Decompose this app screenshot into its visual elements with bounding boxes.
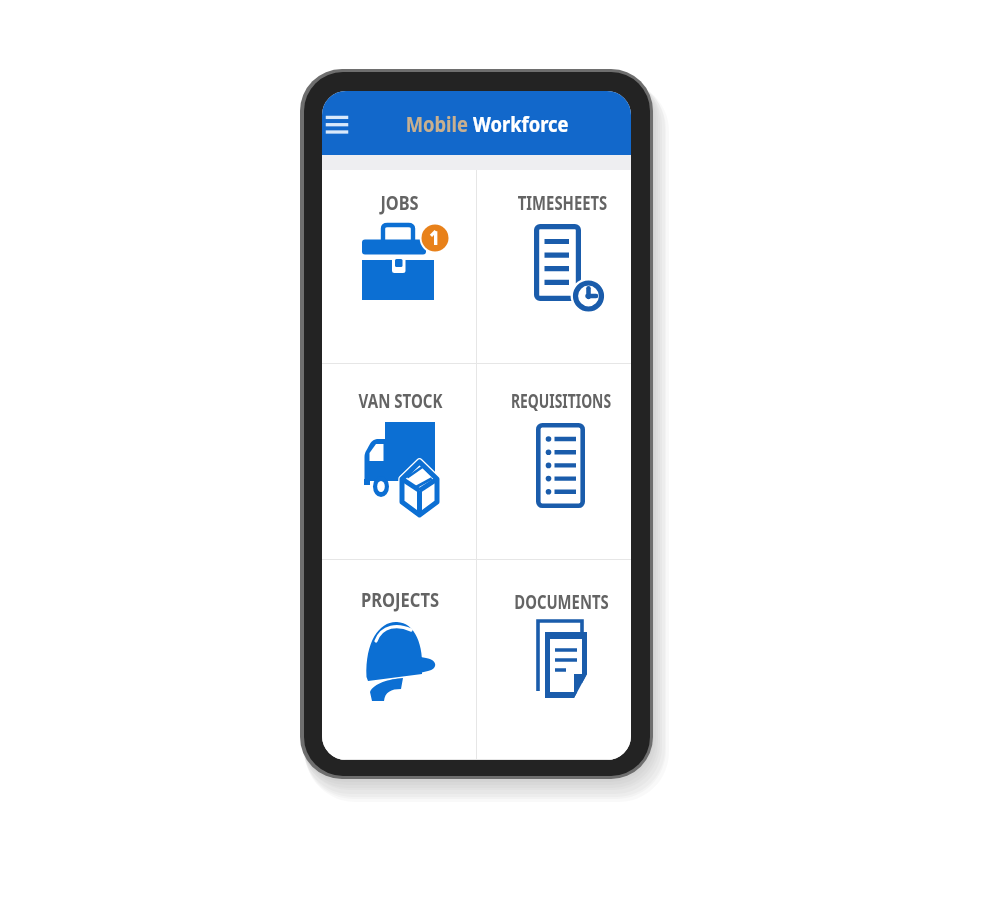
button[interactable]: REQUISITIONS	[477, 364, 631, 560]
staticText: JOBS	[380, 190, 419, 216]
staticText: DOCUMENTS	[514, 589, 609, 615]
staticText: TIMESHEETS	[518, 190, 607, 216]
staticText: VAN STOCK	[358, 388, 443, 414]
button[interactable]: PROJECTS	[322, 560, 476, 760]
button[interactable]: DOCUMENTS	[477, 560, 631, 760]
staticText: Workforce	[473, 110, 569, 139]
staticText: Mobile	[406, 110, 473, 139]
button[interactable]: TIMESHEETS	[477, 170, 631, 364]
button[interactable]: VAN STOCK	[322, 364, 476, 560]
staticText: REQUISITIONS	[511, 388, 611, 414]
button[interactable]: Open navigation menu	[322, 101, 360, 145]
staticText: PROJECTS	[361, 587, 439, 613]
button[interactable]: JOBS	[322, 170, 476, 364]
